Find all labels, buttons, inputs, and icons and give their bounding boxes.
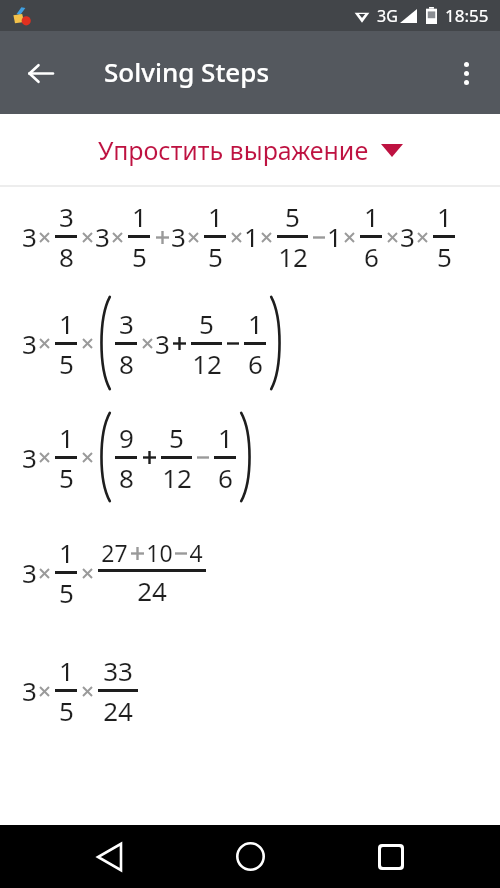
staticText: 5 <box>132 239 147 274</box>
staticText: 5 <box>169 420 184 455</box>
staticText: 1 <box>437 199 452 234</box>
staticText: 6 <box>218 460 233 495</box>
staticText: 5 <box>59 460 74 495</box>
staticText: 24 <box>103 693 133 728</box>
staticText: 1 <box>59 653 74 688</box>
button[interactable]: Recent apps <box>359 825 423 888</box>
staticText: 1 <box>248 306 263 341</box>
staticText: 3 <box>22 326 37 361</box>
staticText: 5 <box>59 575 74 610</box>
staticText: 1 <box>327 219 342 254</box>
staticText: 3 <box>155 326 170 361</box>
button[interactable]: Упростить выражение <box>0 114 500 185</box>
staticText: 3 <box>95 219 110 254</box>
staticText: 1 <box>59 535 74 570</box>
staticText: 8 <box>119 346 134 381</box>
staticText: 6 <box>364 239 379 274</box>
staticText: 1 <box>59 306 74 341</box>
staticText: 8 <box>59 239 74 274</box>
button[interactable]: Home <box>218 825 282 888</box>
button[interactable]: 3 <box>0 285 500 400</box>
button[interactable]: 3 <box>0 631 500 749</box>
staticText: 1 <box>59 420 74 455</box>
staticText: 1 <box>208 199 223 234</box>
staticText: 12 <box>162 460 192 495</box>
staticText: 8 <box>119 460 134 495</box>
staticText: 3 <box>22 440 37 475</box>
staticText: 24 <box>137 573 167 608</box>
staticText: 3 <box>22 673 37 708</box>
staticText: 1 <box>244 219 259 254</box>
staticText: 3 <box>22 219 37 254</box>
staticText: 12 <box>278 239 308 274</box>
staticText: 5 <box>437 239 452 274</box>
staticText: 9 <box>119 420 134 455</box>
staticText: 27 <box>101 537 128 568</box>
staticText: 1 <box>132 199 147 234</box>
staticText: 3 <box>59 199 74 234</box>
button[interactable]: Back <box>16 49 64 97</box>
staticText: 4 <box>189 537 203 568</box>
staticText: 18:55 <box>445 4 489 27</box>
staticText: 3 <box>119 306 134 341</box>
staticText: 10 <box>146 537 173 568</box>
staticText: 3G <box>377 5 398 27</box>
staticText: 1 <box>218 420 233 455</box>
staticText: 3 <box>22 555 37 590</box>
staticText: 5 <box>59 693 74 728</box>
button[interactable]: 3 <box>0 400 500 513</box>
staticText: 3 <box>400 219 415 254</box>
staticText: Solving Steps <box>104 54 270 89</box>
staticText: 5 <box>59 346 74 381</box>
button[interactable]: 3 <box>0 187 500 285</box>
staticText: 12 <box>192 346 222 381</box>
staticText: 6 <box>248 346 263 381</box>
staticText: 33 <box>103 653 133 688</box>
staticText: 1 <box>364 199 379 234</box>
staticText: 5 <box>199 306 214 341</box>
staticText: 5 <box>208 239 223 274</box>
staticText: Упростить выражение <box>98 133 369 167</box>
staticText: 5 <box>285 199 300 234</box>
button[interactable]: 3 <box>0 513 500 631</box>
button[interactable]: More options <box>442 49 490 97</box>
staticText: 3 <box>171 219 186 254</box>
button[interactable]: Back <box>77 825 141 888</box>
